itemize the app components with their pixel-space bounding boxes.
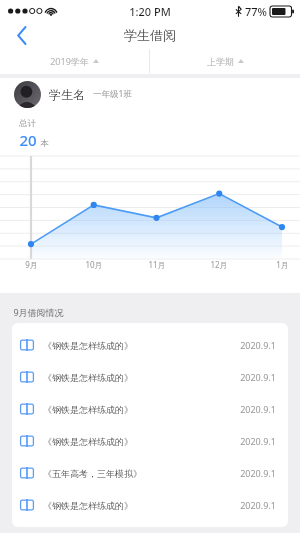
staticText: 上学期 bbox=[207, 56, 234, 67]
staticText: 学生借阅 bbox=[124, 27, 176, 43]
staticText: 20 bbox=[19, 130, 37, 150]
staticText: 2020.9.1 bbox=[240, 371, 276, 383]
staticText: 《钢铁是怎样练成的》 bbox=[43, 372, 240, 383]
staticText: 《钢铁是怎样练成的》 bbox=[43, 340, 240, 351]
staticText: 77% bbox=[245, 4, 267, 19]
button[interactable]: 《钢铁是怎样练成的》 bbox=[12, 329, 288, 361]
staticText: 学生名 bbox=[49, 87, 85, 102]
staticText: 12月 bbox=[210, 259, 228, 270]
button[interactable]: 2019学年 bbox=[0, 48, 149, 74]
staticText: 本 bbox=[40, 138, 49, 149]
staticText: 总计 bbox=[19, 118, 36, 129]
staticText: 《钢铁是怎样练成的》 bbox=[43, 404, 240, 415]
staticText: 2020.9.1 bbox=[240, 467, 276, 479]
button[interactable]: 《钢铁是怎样练成的》 bbox=[12, 425, 288, 457]
staticText: 9月 bbox=[25, 259, 38, 270]
staticText: 《钢铁是怎样练成的》 bbox=[43, 436, 240, 447]
staticText: 2020.9.1 bbox=[240, 339, 276, 351]
button[interactable]: 《钢铁是怎样练成的》 bbox=[12, 393, 288, 425]
button[interactable]: 上学期 bbox=[150, 48, 300, 74]
staticText: 10月 bbox=[85, 259, 103, 270]
staticText: 9月借阅情况 bbox=[13, 306, 64, 318]
button[interactable]: 《钢铁是怎样练成的》 bbox=[12, 489, 288, 521]
button[interactable]: Back bbox=[0, 22, 44, 48]
staticText: 《五年高考，三年模拟》 bbox=[43, 468, 240, 479]
button[interactable]: 《钢铁是怎样练成的》 bbox=[12, 361, 288, 393]
staticText: 2020.9.1 bbox=[240, 435, 276, 447]
staticText: 1:20 PM bbox=[129, 4, 171, 19]
staticText: 11月 bbox=[148, 259, 166, 270]
button[interactable]: 学生名 bbox=[0, 78, 300, 110]
staticText: 《钢铁是怎样练成的》 bbox=[43, 500, 240, 511]
staticText: 2020.9.1 bbox=[240, 499, 276, 511]
staticText: 1月 bbox=[276, 259, 289, 270]
staticText: 2020.9.1 bbox=[240, 403, 276, 415]
staticText: 一年级1班 bbox=[93, 88, 132, 100]
staticText: 2019学年 bbox=[50, 55, 89, 67]
button[interactable]: 《五年高考，三年模拟》 bbox=[12, 457, 288, 489]
